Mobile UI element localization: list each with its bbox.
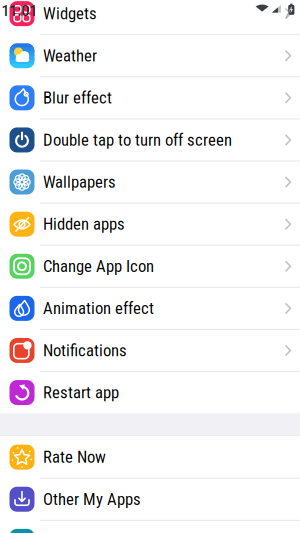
staticText: Widgets (43, 4, 97, 23)
staticText: Blur effect (43, 88, 112, 108)
staticText: Change App Icon (43, 256, 154, 276)
button[interactable]: Other My Apps (0, 478, 300, 520)
button[interactable]: Weather (0, 35, 300, 77)
staticText: Rate Now (43, 447, 106, 467)
button[interactable]: Animation effect (0, 287, 300, 329)
staticText: Animation effect (43, 299, 154, 318)
staticText: Wallpapers (43, 172, 116, 192)
button[interactable]: Restart app (0, 371, 300, 414)
staticText: Weather (43, 46, 97, 65)
button[interactable]: Blur effect (0, 77, 300, 119)
staticText: Restart app (43, 383, 119, 402)
staticText: Double tap to turn off screen (43, 130, 232, 150)
button[interactable]: Rate Now (0, 436, 300, 478)
button[interactable]: Widgets (0, 0, 300, 35)
staticText: Hidden apps (43, 214, 125, 234)
button[interactable]: Notifications (0, 329, 300, 371)
staticText: Other My Apps (43, 489, 141, 509)
staticText: 11:01 (1, 3, 37, 19)
button[interactable]: Hidden apps (0, 203, 300, 245)
button[interactable]: Change App Icon (0, 245, 300, 287)
button[interactable]: Wallpapers (0, 161, 300, 203)
staticText: Notifications (43, 341, 127, 360)
button[interactable]: Double tap to turn off screen (0, 119, 300, 161)
